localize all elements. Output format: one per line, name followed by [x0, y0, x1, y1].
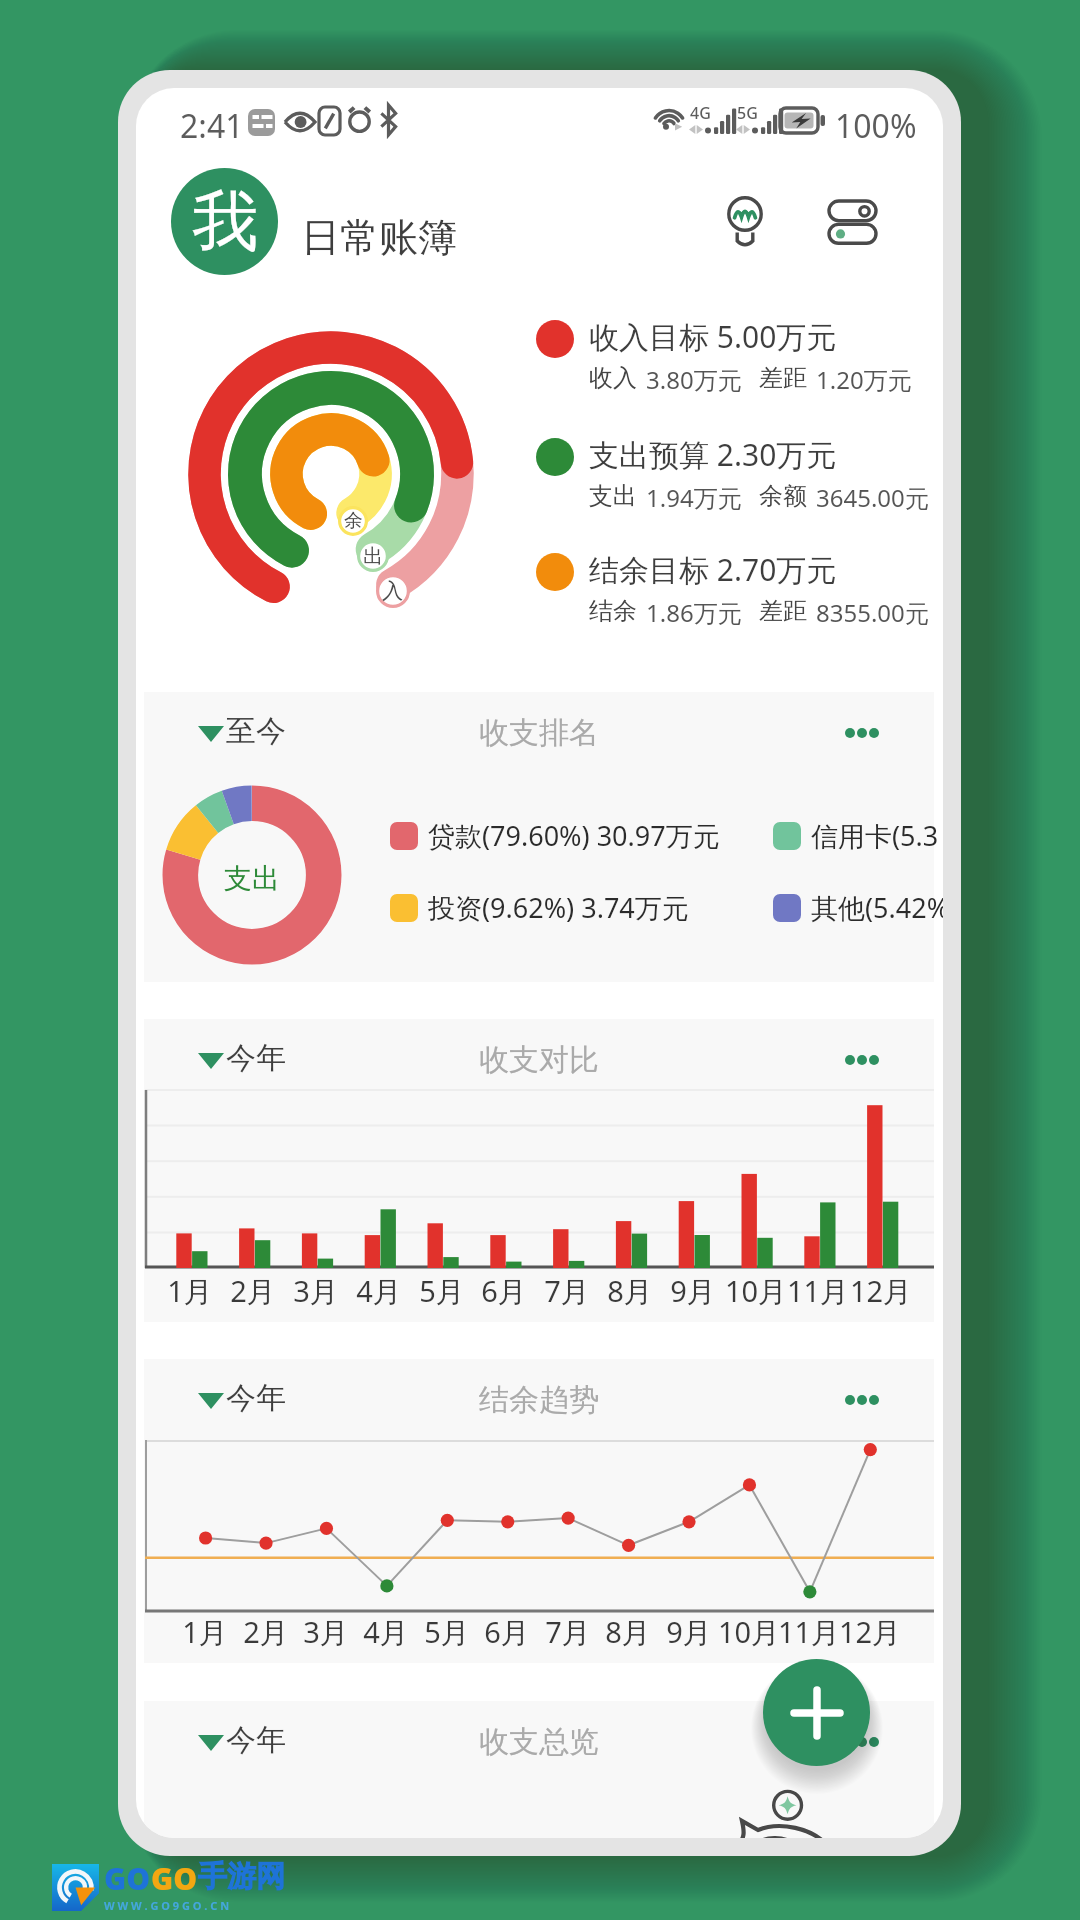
- staticText: 7月: [522, 1271, 612, 1311]
- staticText: 10月: [704, 1612, 794, 1652]
- staticText: 结余: [589, 596, 637, 626]
- staticText: 8月: [585, 1271, 675, 1311]
- button[interactable]: Budget summary: [136, 204, 943, 604]
- staticText: 至今: [226, 712, 286, 750]
- staticText: 结余目标 2.70万元: [589, 549, 837, 590]
- button[interactable]: 收支排名: [144, 692, 934, 982]
- staticText: 2月: [221, 1612, 311, 1652]
- staticText: 4G: [690, 102, 711, 124]
- staticText: 入: [382, 578, 404, 605]
- staticText: 5G: [737, 102, 758, 124]
- staticText: 其他(5.42%: [811, 889, 943, 926]
- staticText: 8月: [583, 1612, 673, 1652]
- staticText: 100%: [835, 104, 917, 148]
- staticText: 1月: [160, 1612, 250, 1652]
- button[interactable]: More options: [845, 1395, 879, 1405]
- staticText: 9月: [644, 1612, 734, 1652]
- staticText: 7月: [523, 1612, 613, 1652]
- staticText: 贷款(79.60%) 30.97万元: [428, 817, 720, 854]
- button[interactable]: More options: [845, 728, 879, 738]
- button[interactable]: More options: [845, 1055, 879, 1065]
- button[interactable]: Add record: [763, 1659, 870, 1766]
- button[interactable]: Tips: [705, 174, 785, 254]
- staticText: 3月: [271, 1271, 361, 1311]
- button[interactable]: 今年: [198, 1721, 286, 1759]
- staticText: 出: [363, 544, 383, 569]
- staticText: 1月: [145, 1271, 235, 1311]
- staticText: 10月: [711, 1271, 801, 1311]
- button[interactable]: 结余趋势: [144, 1359, 934, 1663]
- staticText: 2月: [208, 1271, 298, 1311]
- staticText: 1.20万元: [816, 363, 912, 396]
- staticText: 日常账簿: [301, 213, 457, 262]
- staticText: GO: [151, 1858, 198, 1899]
- button[interactable]: Profile: [171, 168, 278, 275]
- staticText: 结余趋势: [479, 1381, 599, 1419]
- staticText: 3.80万元: [646, 363, 742, 396]
- staticText: 12月: [825, 1612, 915, 1652]
- staticText: 余: [344, 509, 363, 533]
- staticText: 8355.00元: [816, 596, 929, 629]
- staticText: 今年: [226, 1039, 286, 1077]
- staticText: 支出: [589, 481, 637, 511]
- staticText: 今年: [226, 1379, 286, 1417]
- staticText: 收入目标 5.00万元: [589, 316, 837, 357]
- staticText: 12月: [836, 1271, 926, 1311]
- staticText: 支出预算 2.30万元: [589, 434, 837, 475]
- staticText: 4月: [341, 1612, 431, 1652]
- button[interactable]: 收支对比: [144, 1019, 934, 1322]
- staticText: W W W . G O 9 G O . C N: [104, 1898, 230, 1913]
- staticText: 5月: [402, 1612, 492, 1652]
- button[interactable]: Settings: [819, 191, 886, 254]
- staticText: 1.86万元: [646, 596, 742, 629]
- button[interactable]: 今年: [198, 1039, 286, 1077]
- button[interactable]: 收支总览: [144, 1701, 934, 1838]
- button[interactable]: More options: [845, 1737, 879, 1747]
- staticText: 支出: [224, 861, 280, 896]
- staticText: 手游网: [198, 1858, 285, 1895]
- staticText: 11月: [764, 1612, 854, 1652]
- staticText: 6月: [462, 1612, 552, 1652]
- staticText: 我: [192, 180, 258, 263]
- staticText: 6月: [459, 1271, 549, 1311]
- button[interactable]: 至今: [198, 712, 286, 750]
- staticText: 1.94万元: [646, 481, 742, 514]
- staticText: 收支排名: [479, 714, 599, 752]
- staticText: 9月: [648, 1271, 738, 1311]
- staticText: 2:41: [180, 104, 244, 148]
- staticText: 3月: [281, 1612, 371, 1652]
- staticText: 收入: [589, 363, 637, 393]
- staticText: 收支对比: [479, 1041, 599, 1079]
- staticText: 差距: [759, 363, 807, 393]
- staticText: 今年: [226, 1721, 286, 1759]
- staticText: 信用卡(5.3: [811, 817, 939, 854]
- staticText: GO: [104, 1858, 151, 1899]
- staticText: 投资(9.62%) 3.74万元: [428, 889, 689, 926]
- staticText: 余额: [759, 481, 807, 511]
- staticText: 3645.00元: [816, 481, 929, 514]
- staticText: 差距: [759, 596, 807, 626]
- staticText: 11月: [773, 1271, 863, 1311]
- button[interactable]: 今年: [198, 1379, 286, 1417]
- staticText: 5月: [397, 1271, 487, 1311]
- staticText: 4月: [334, 1271, 424, 1311]
- staticText: 收支总览: [479, 1723, 599, 1761]
